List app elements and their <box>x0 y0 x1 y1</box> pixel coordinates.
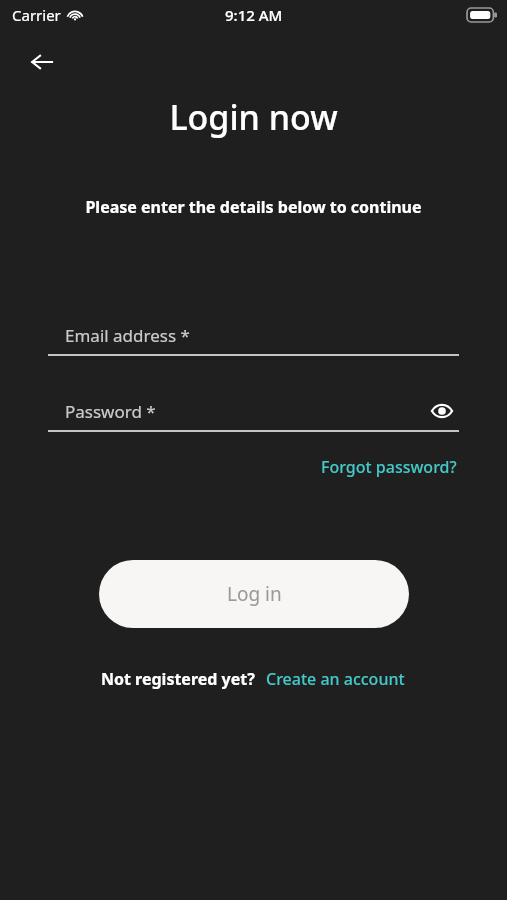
staticText: Email address * <box>65 324 190 347</box>
staticText: Log in <box>227 581 282 607</box>
staticText: Please enter the details below to contin… <box>0 196 507 218</box>
button[interactable]: Email address * <box>48 316 459 356</box>
staticText: Login now <box>0 94 507 140</box>
button[interactable]: Show password <box>425 394 459 428</box>
staticText: 9:12 AM <box>225 5 283 25</box>
button[interactable]: Back <box>18 38 66 86</box>
staticText: Create an account <box>266 668 405 690</box>
staticText: Carrier <box>12 5 61 25</box>
staticText: Password * <box>65 400 156 423</box>
staticText: Forgot password? <box>321 456 457 478</box>
button[interactable]: Password * <box>48 392 459 432</box>
button[interactable]: Log in <box>99 560 409 628</box>
button[interactable]: Forgot password? <box>319 452 459 482</box>
button[interactable]: Create an account <box>264 664 407 694</box>
staticText: Not registered yet? <box>101 668 255 690</box>
